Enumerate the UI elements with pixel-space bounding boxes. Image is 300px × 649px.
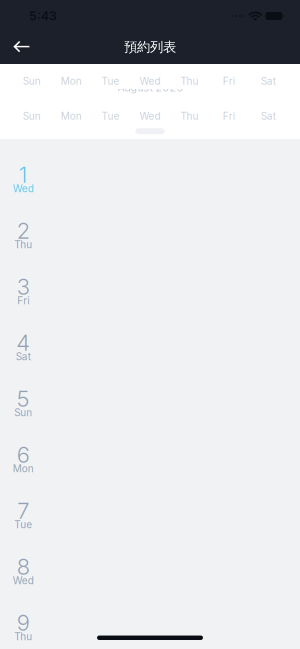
staticText: 9 bbox=[17, 609, 30, 636]
staticText: Tue bbox=[102, 75, 120, 87]
button[interactable]: 5 bbox=[0, 376, 300, 432]
staticText: Sun bbox=[23, 75, 41, 87]
staticText: 5 bbox=[17, 385, 30, 412]
staticText: Thu bbox=[14, 238, 32, 251]
button[interactable]: 6 bbox=[0, 432, 300, 488]
staticText: Thu bbox=[180, 110, 198, 122]
staticText: Wed bbox=[13, 182, 34, 195]
staticText: Tue bbox=[102, 110, 120, 122]
staticText: Sun bbox=[14, 406, 32, 419]
button[interactable]: 3 bbox=[0, 264, 300, 320]
staticText: Tue bbox=[14, 518, 32, 531]
staticText: 8 bbox=[17, 553, 30, 580]
button[interactable]: 8 bbox=[0, 544, 300, 600]
staticText: 4 bbox=[16, 329, 30, 356]
staticText: Fri bbox=[17, 294, 29, 307]
button[interactable]: 1 bbox=[0, 152, 300, 208]
staticText: 2 bbox=[17, 217, 30, 244]
button[interactable]: 2 bbox=[0, 208, 300, 264]
staticText: Wed bbox=[139, 110, 160, 122]
button[interactable]: 9 bbox=[0, 600, 300, 649]
staticText: Thu bbox=[180, 75, 198, 87]
staticText: 預約列表 bbox=[124, 39, 176, 55]
staticText: Mon bbox=[13, 462, 34, 475]
staticText: 5:43 bbox=[29, 9, 57, 23]
staticText: Mon bbox=[61, 110, 82, 122]
staticText: Wed bbox=[139, 75, 160, 87]
staticText: 6 bbox=[17, 441, 30, 468]
staticText: Thu bbox=[14, 630, 32, 643]
staticText: Sat bbox=[261, 110, 276, 122]
staticText: August 2025 bbox=[117, 81, 182, 94]
button[interactable]: 4 bbox=[0, 320, 300, 376]
staticText: Sun bbox=[23, 110, 41, 122]
staticText: Fri bbox=[223, 110, 235, 122]
staticText: 3 bbox=[17, 273, 30, 300]
staticText: Wed bbox=[13, 574, 34, 587]
staticText: Sat bbox=[261, 75, 276, 87]
staticText: 1 bbox=[19, 161, 28, 188]
staticText: 7 bbox=[17, 497, 29, 524]
staticText: Sat bbox=[16, 350, 31, 363]
staticText: Mon bbox=[61, 75, 82, 87]
staticText: Fri bbox=[223, 75, 235, 87]
button[interactable]: 7 bbox=[0, 488, 300, 544]
button[interactable]: Back bbox=[0, 30, 37, 64]
